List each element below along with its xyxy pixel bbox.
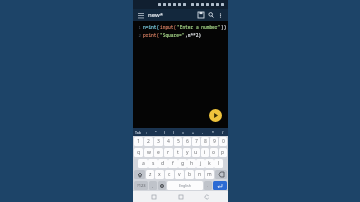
button[interactable]: n bbox=[195, 170, 204, 179]
button[interactable]: k bbox=[205, 159, 214, 168]
button[interactable]: g bbox=[178, 159, 187, 168]
button[interactable]: = bbox=[178, 128, 188, 136]
button[interactable]: 1 bbox=[134, 137, 143, 146]
staticText: r bbox=[167, 149, 170, 156]
staticText: = bbox=[182, 130, 185, 135]
staticText: m bbox=[207, 171, 212, 178]
button[interactable]: Run program bbox=[209, 109, 222, 122]
staticText: g bbox=[181, 160, 185, 167]
button[interactable]: Save file bbox=[196, 10, 206, 20]
staticText: z bbox=[149, 171, 152, 178]
staticText: 9 bbox=[213, 138, 216, 145]
button[interactable]: : bbox=[142, 128, 151, 136]
button[interactable]: h bbox=[187, 159, 196, 168]
button[interactable]: Find bbox=[206, 10, 216, 20]
button[interactable]: 4 bbox=[164, 137, 173, 146]
button[interactable]: u bbox=[192, 148, 200, 157]
button[interactable]: ) bbox=[169, 128, 178, 136]
button[interactable]: 9 bbox=[210, 137, 218, 146]
button[interactable]: a bbox=[138, 159, 148, 168]
staticText: ) bbox=[173, 130, 175, 135]
button[interactable]: z bbox=[146, 170, 154, 179]
staticText: a bbox=[142, 160, 145, 167]
staticText: 7 bbox=[195, 138, 198, 145]
button[interactable]: * bbox=[208, 128, 218, 136]
staticText: l bbox=[218, 160, 220, 167]
staticText: input( bbox=[160, 24, 177, 30]
staticText: . bbox=[207, 183, 209, 188]
staticText: v bbox=[178, 171, 181, 178]
button[interactable]: q bbox=[134, 148, 143, 157]
button[interactable]: Back bbox=[202, 192, 212, 202]
button[interactable]: ( bbox=[160, 128, 169, 136]
button[interactable]: e bbox=[154, 148, 163, 157]
button[interactable]: x bbox=[155, 170, 164, 179]
staticText: u bbox=[194, 149, 198, 156]
button[interactable]: f bbox=[168, 159, 178, 168]
staticText: new* bbox=[148, 11, 163, 19]
button[interactable]: , bbox=[149, 181, 157, 190]
button[interactable]: / bbox=[218, 128, 228, 136]
staticText: / bbox=[222, 130, 224, 135]
staticText: Tab bbox=[135, 130, 141, 135]
staticText: 1 bbox=[135, 25, 141, 30]
button[interactable]: w bbox=[144, 148, 153, 157]
button[interactable]: " bbox=[151, 128, 160, 136]
staticText: 2 bbox=[147, 138, 150, 145]
staticText: p bbox=[221, 149, 225, 156]
staticText: o bbox=[212, 149, 216, 156]
staticText: + bbox=[192, 130, 195, 135]
button[interactable]: Enter bbox=[213, 181, 227, 190]
button[interactable]: 6 bbox=[183, 137, 191, 146]
button[interactable]: ?123 bbox=[134, 181, 148, 190]
staticText: " bbox=[155, 130, 157, 135]
button[interactable]: 5 bbox=[174, 137, 182, 146]
button[interactable]: r bbox=[164, 148, 173, 157]
button[interactable]: s bbox=[148, 159, 158, 168]
button[interactable]: 7 bbox=[192, 137, 200, 146]
button[interactable]: English bbox=[167, 181, 203, 190]
button[interactable]: . bbox=[204, 181, 212, 190]
button[interactable]: 0 bbox=[219, 137, 227, 146]
staticText: n bbox=[198, 171, 202, 178]
staticText: 0 bbox=[222, 138, 225, 145]
button[interactable]: - bbox=[198, 128, 208, 136]
button[interactable]: 8 bbox=[201, 137, 209, 146]
button[interactable]: o bbox=[210, 148, 218, 157]
button[interactable]: + bbox=[188, 128, 198, 136]
button[interactable]: Home bbox=[176, 192, 186, 202]
button[interactable]: Open navigation menu bbox=[136, 11, 145, 20]
button[interactable]: More options bbox=[216, 11, 225, 20]
button[interactable]: Shift bbox=[134, 170, 145, 179]
staticText: e bbox=[157, 149, 160, 156]
staticText: )) bbox=[221, 24, 227, 30]
button[interactable]: t bbox=[174, 148, 182, 157]
staticText: "Square=" bbox=[160, 32, 185, 38]
button[interactable]: v bbox=[175, 170, 184, 179]
staticText: print( bbox=[143, 32, 160, 38]
button[interactable]: 3 bbox=[154, 137, 163, 146]
staticText: 3 bbox=[157, 138, 160, 145]
button[interactable]: l bbox=[214, 159, 223, 168]
button[interactable]: Backspace bbox=[215, 170, 227, 179]
button[interactable]: j bbox=[196, 159, 205, 168]
button[interactable]: Emoji bbox=[158, 181, 166, 190]
staticText: 1 bbox=[137, 138, 140, 145]
button[interactable]: c bbox=[165, 170, 174, 179]
button[interactable]: Recent apps bbox=[149, 192, 159, 202]
staticText: ,n**2) bbox=[185, 32, 202, 38]
button[interactable]: m bbox=[205, 170, 214, 179]
button[interactable]: i bbox=[201, 148, 209, 157]
button[interactable]: d bbox=[158, 159, 168, 168]
button[interactable]: Tab bbox=[133, 128, 142, 136]
staticText: 5 bbox=[177, 138, 180, 145]
staticText: y bbox=[186, 149, 189, 156]
staticText: * bbox=[212, 130, 214, 135]
button[interactable]: y bbox=[183, 148, 191, 157]
button[interactable]: b bbox=[185, 170, 194, 179]
button[interactable]: 2 bbox=[144, 137, 153, 146]
staticText: 4 bbox=[167, 138, 170, 145]
staticText: - bbox=[202, 130, 204, 135]
staticText: f bbox=[172, 160, 174, 167]
button[interactable]: p bbox=[219, 148, 227, 157]
